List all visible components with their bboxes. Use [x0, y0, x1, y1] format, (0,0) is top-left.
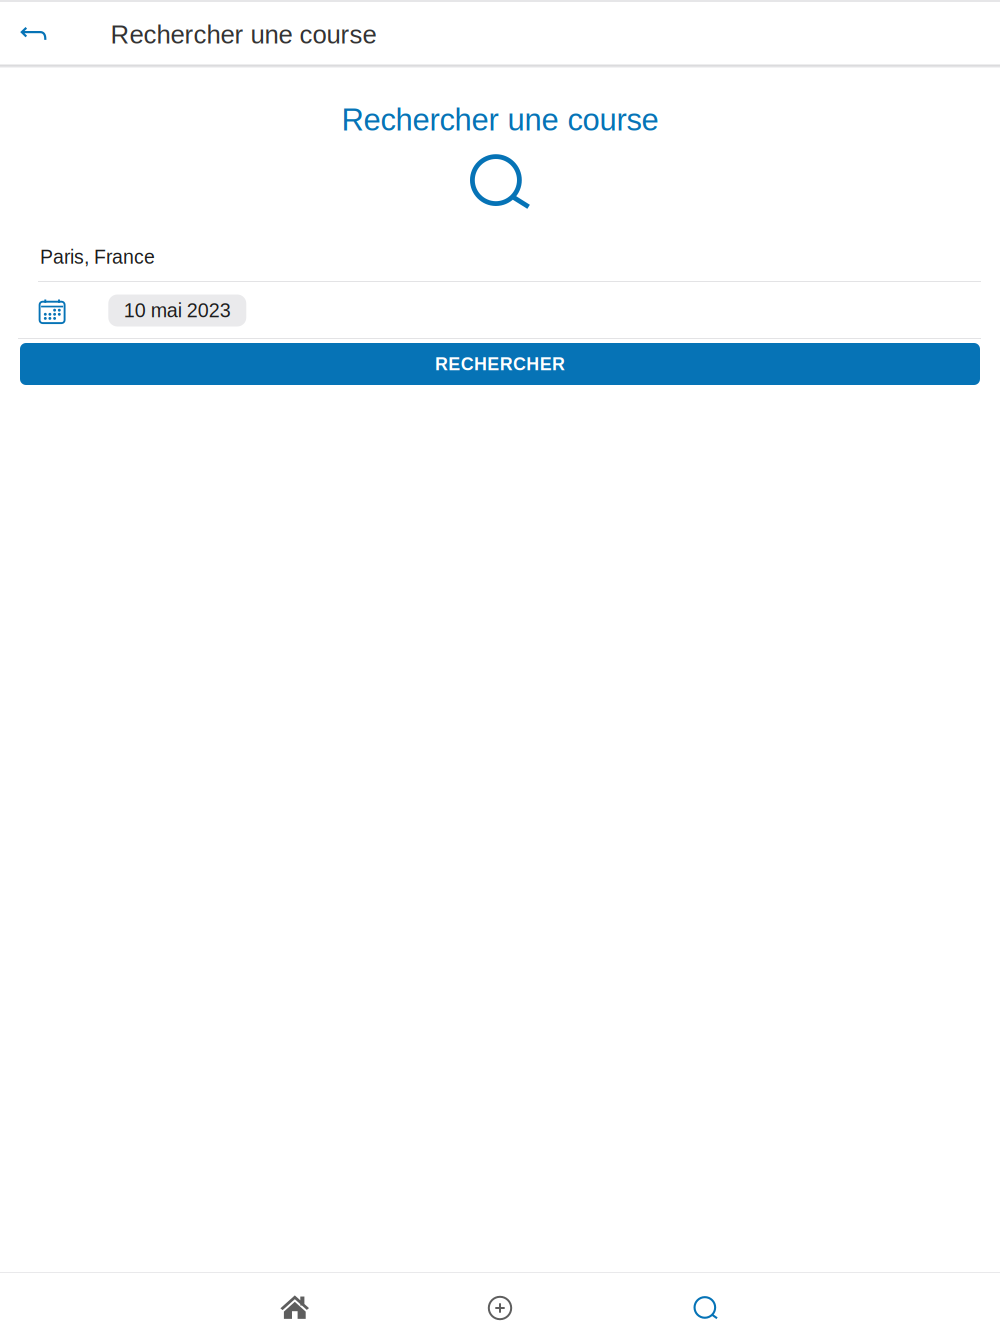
staticText: Rechercher une course	[341, 102, 658, 137]
staticText: RECHERCHER	[435, 354, 565, 374]
button[interactable]: RECHERCHER	[20, 343, 980, 385]
button[interactable]: Home	[215, 1277, 375, 1334]
staticText: 10 mai 2023	[124, 299, 231, 321]
button[interactable]: Paris, France	[40, 239, 981, 274]
button[interactable]: 10 mai 2023	[38, 294, 258, 338]
button[interactable]: Create	[420, 1277, 580, 1334]
button[interactable]: Back	[1, 2, 65, 65]
staticText: Paris, France	[40, 246, 155, 268]
button[interactable]: Search	[626, 1277, 786, 1334]
staticText: Rechercher une course	[110, 20, 376, 49]
